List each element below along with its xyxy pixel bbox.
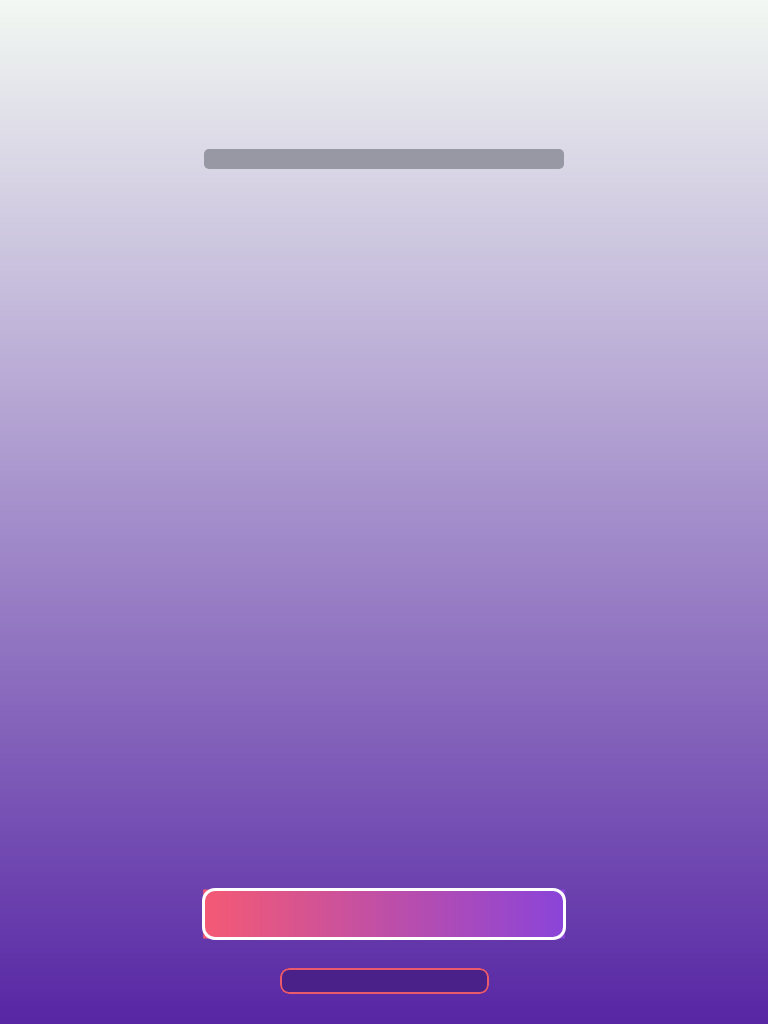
- button[interactable]: Headline: [204, 149, 564, 169]
- button[interactable]: Get started: [202, 888, 566, 940]
- button[interactable]: Secondary action: [280, 968, 489, 994]
